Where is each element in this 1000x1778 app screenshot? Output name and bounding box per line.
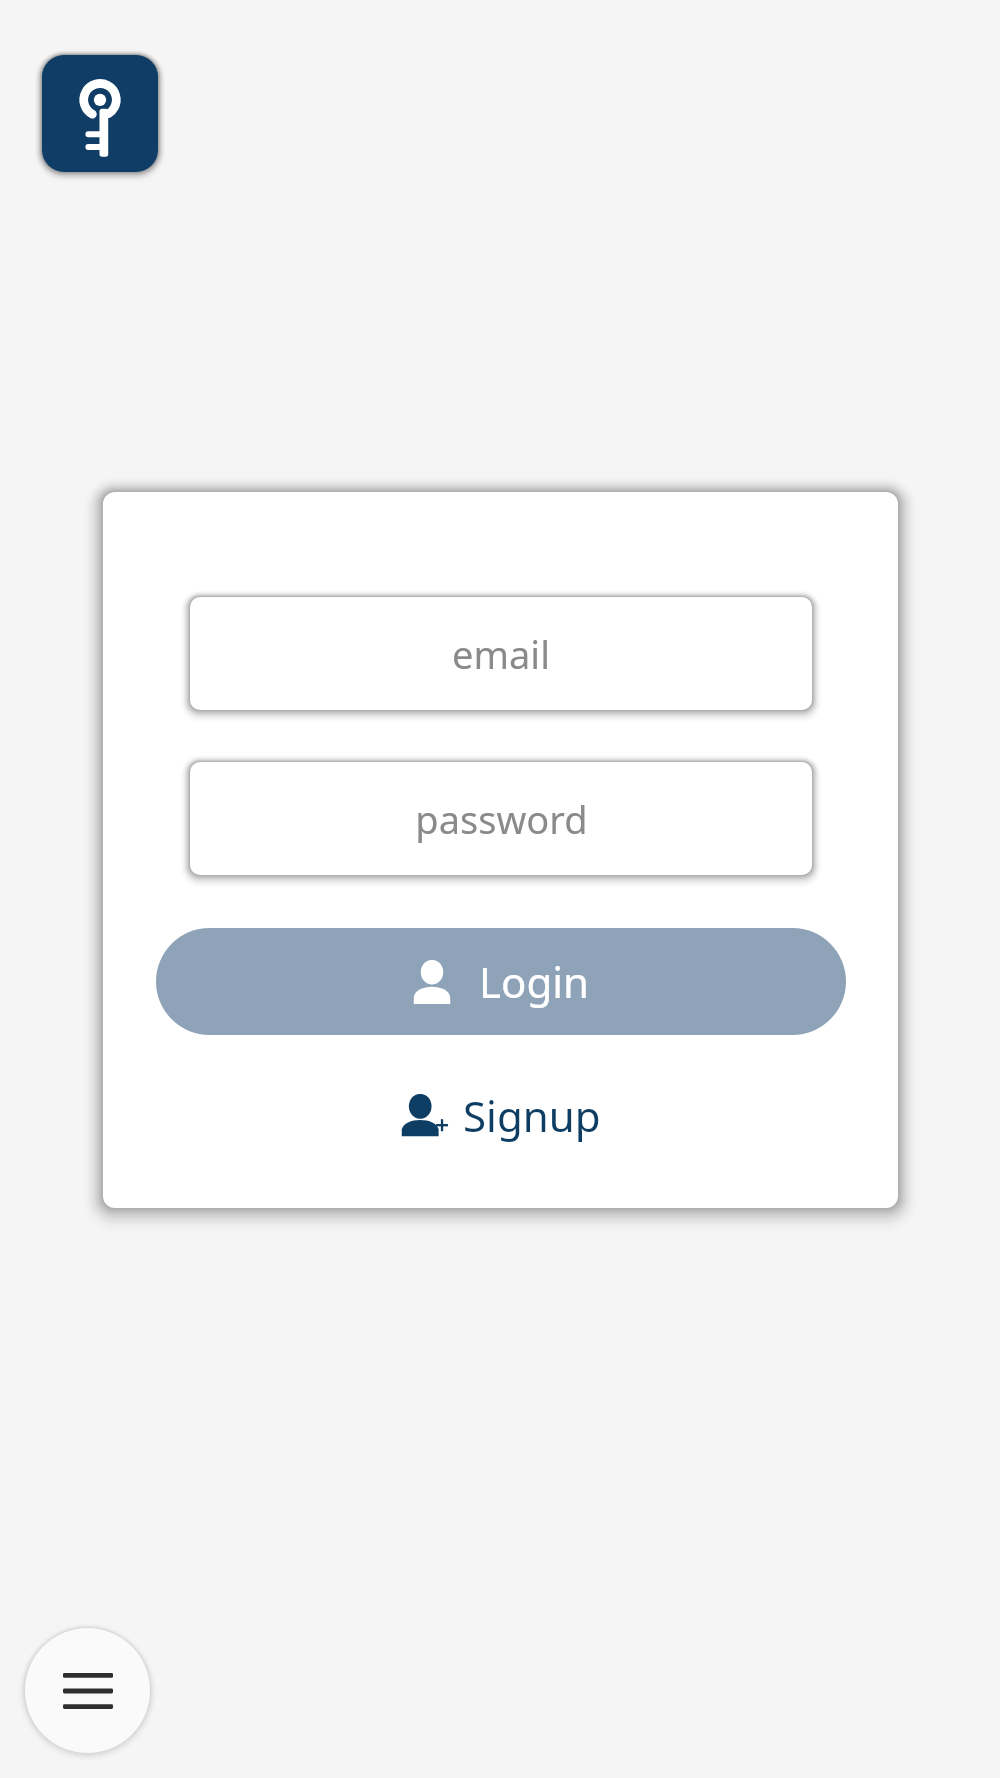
button[interactable]: password <box>190 762 812 875</box>
button[interactable]: Signup <box>387 1079 615 1152</box>
button[interactable]: App logo <box>42 55 158 172</box>
staticText: email <box>452 628 550 680</box>
button[interactable]: Menu <box>25 1628 150 1753</box>
staticText: password <box>415 793 588 845</box>
button[interactable]: email <box>190 597 812 710</box>
button[interactable]: Login <box>156 928 846 1035</box>
staticText: Signup <box>463 1087 601 1144</box>
staticText: Login <box>479 953 590 1010</box>
